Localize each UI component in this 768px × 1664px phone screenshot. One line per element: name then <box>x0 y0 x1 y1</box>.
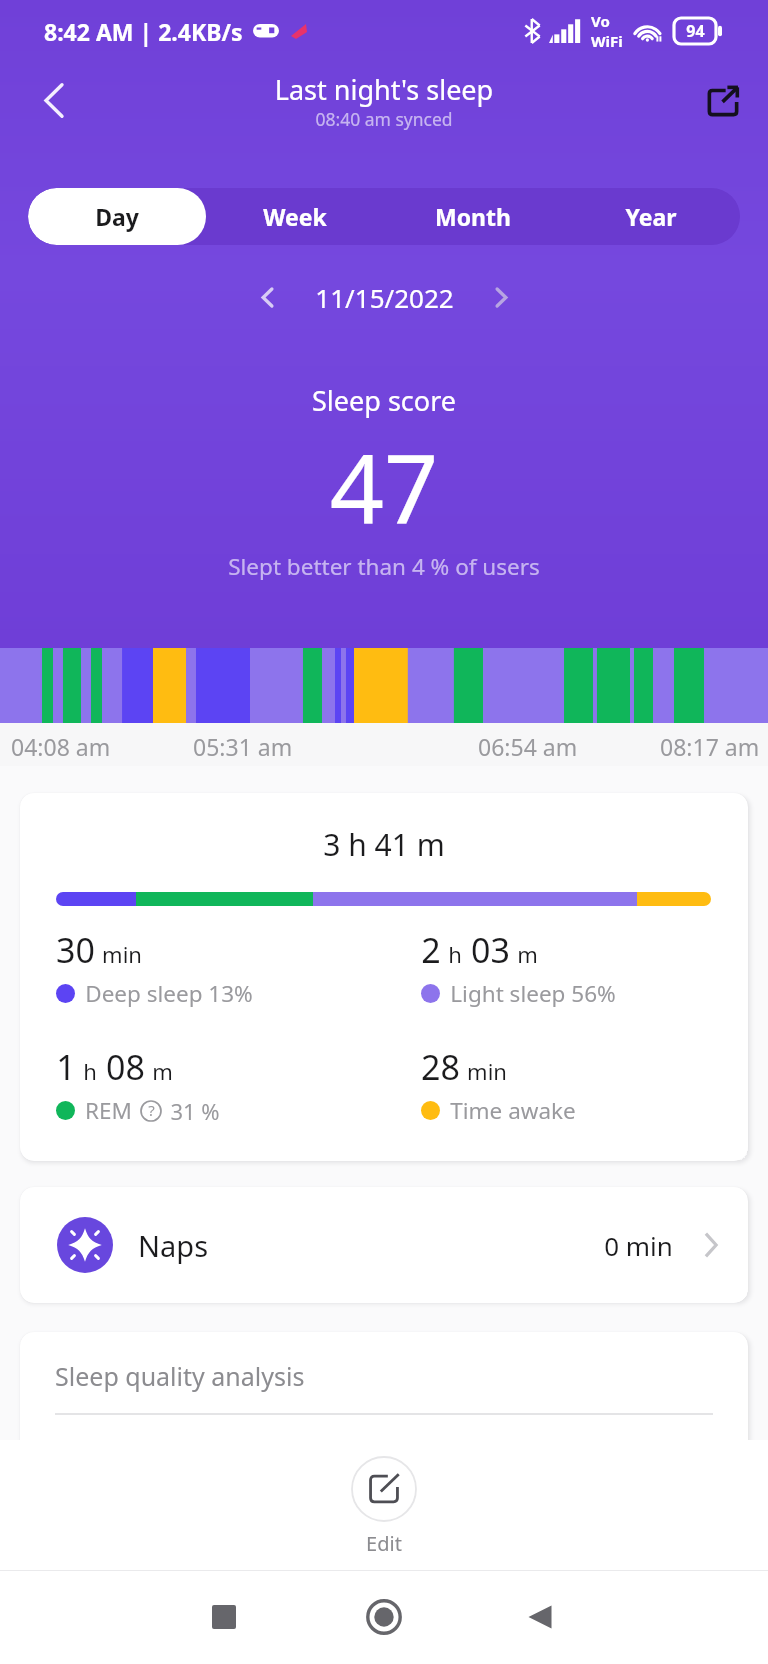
staticText: Time awake <box>450 1095 576 1126</box>
staticText: 94 <box>686 20 705 42</box>
button[interactable]: Recents <box>192 1585 256 1649</box>
staticText: Last night's sleep <box>0 71 768 108</box>
button[interactable]: Previous day <box>245 275 289 319</box>
staticText: ? <box>148 1100 155 1120</box>
staticText: 05:31 am <box>193 731 293 762</box>
staticText: REM <box>85 1095 132 1126</box>
staticText: Day <box>95 201 139 232</box>
staticText: min <box>102 939 142 969</box>
staticText: Week <box>263 201 327 232</box>
staticText: 03 <box>471 927 510 973</box>
staticText: Edit <box>366 1530 402 1557</box>
staticText: min <box>467 1056 507 1086</box>
staticText: 30 <box>56 927 95 973</box>
staticText: Deep sleep 13% <box>85 978 253 1009</box>
staticText: 31 % <box>170 1096 220 1126</box>
staticText: Naps <box>138 1226 209 1265</box>
button[interactable]: Naps <box>20 1187 748 1303</box>
staticText: h <box>83 1056 97 1086</box>
staticText: 08:40 am synced <box>0 107 768 131</box>
staticText: Light sleep 56% <box>450 978 616 1009</box>
staticText: 28 <box>421 1044 460 1090</box>
staticText: Slept better than 4 % of users <box>0 551 768 582</box>
staticText: Sleep quality analysis <box>55 1359 305 1393</box>
staticText: 1 <box>56 1044 76 1090</box>
button[interactable]: Home <box>352 1585 416 1649</box>
staticText: WiFi <box>591 31 623 51</box>
staticText: Month <box>435 201 511 232</box>
staticText: 04:08 am <box>11 731 111 762</box>
staticText: m <box>517 939 538 969</box>
staticText: 08:17 am <box>660 731 760 762</box>
staticText: 8:42 AM | 2.4KB/s <box>44 16 243 47</box>
staticText: h <box>448 939 462 969</box>
button[interactable]: Year <box>562 188 740 245</box>
staticText: Sleep score <box>0 382 768 419</box>
staticText: 3 h 41 m <box>20 824 748 865</box>
button[interactable]: Share <box>694 72 752 130</box>
staticText: 08 <box>106 1044 145 1090</box>
staticText: m <box>152 1056 173 1086</box>
staticText: 0 min <box>604 1228 673 1263</box>
button[interactable]: Day <box>28 188 206 245</box>
staticText: 11/15/2022 <box>315 280 454 315</box>
button[interactable]: Next day <box>479 275 523 319</box>
button[interactable]: Edit <box>351 1456 417 1557</box>
button[interactable]: Week <box>206 188 384 245</box>
button[interactable]: Back <box>508 1585 572 1649</box>
staticText: 2 <box>421 927 441 973</box>
staticText: 47 <box>0 421 768 550</box>
button[interactable]: Month <box>384 188 562 245</box>
staticText: 06:54 am <box>478 731 578 762</box>
staticText: Vo <box>591 11 610 31</box>
button[interactable]: Back <box>30 76 78 124</box>
staticText: Year <box>625 201 677 232</box>
